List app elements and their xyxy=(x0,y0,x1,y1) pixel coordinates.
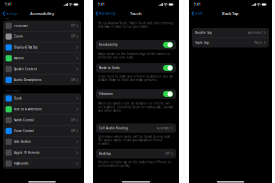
button[interactable]: Motion xyxy=(3,53,81,63)
staticText: Face ID & Attention xyxy=(14,107,42,111)
staticText: Automatic xyxy=(156,126,169,130)
staticText: Switch Control xyxy=(14,118,34,122)
staticText: Zoom xyxy=(14,35,23,38)
staticText: Double Tap xyxy=(195,31,212,34)
staticText: PHYSICAL AND MOTOR xyxy=(5,90,20,92)
staticText: When this switch is off, all vibration o… xyxy=(98,102,173,112)
staticText: Determine where audio will be heard duri… xyxy=(98,135,171,145)
staticText: Audio Descriptions xyxy=(14,78,41,82)
staticText: Settings xyxy=(6,12,17,15)
staticText: Off xyxy=(71,24,75,27)
staticText: Screenshot xyxy=(247,31,262,34)
button[interactable]: Call Audio Routing xyxy=(96,123,176,133)
staticText: Back Tap xyxy=(99,152,111,155)
button[interactable]: Spoken Content xyxy=(3,64,81,74)
button[interactable]: Face ID & Attention xyxy=(3,104,81,114)
staticText: Set up AssistiveTouch, Haptic Touch and … xyxy=(98,21,173,29)
staticText: Voice Control xyxy=(14,129,34,133)
staticText: Touch xyxy=(130,11,142,16)
button[interactable]: Vibration xyxy=(96,89,176,99)
button[interactable]: Display & Text Size xyxy=(3,42,81,53)
button[interactable]: Back Tap xyxy=(96,149,176,158)
staticText: None xyxy=(254,41,262,44)
button[interactable]: Settings xyxy=(0,9,19,18)
staticText: Spoken Content xyxy=(14,67,37,71)
button[interactable]: Switch Control xyxy=(3,115,81,125)
staticText: Side Button xyxy=(14,140,31,143)
staticText: Display & Text Size xyxy=(14,46,38,49)
button[interactable]: Keyboards xyxy=(3,158,81,169)
button[interactable]: Apple TV Remote xyxy=(3,147,81,158)
button[interactable]: Zoom xyxy=(3,31,81,42)
staticText: Accessibility xyxy=(99,12,115,15)
staticText: Triple Tap xyxy=(195,41,209,44)
staticText: Off xyxy=(71,118,75,122)
staticText: Double or triple tap on the back of your… xyxy=(98,160,171,168)
staticText: VISION xyxy=(5,17,9,19)
button[interactable]: Double Tap xyxy=(192,28,269,38)
button[interactable]: Reachability xyxy=(96,40,176,50)
staticText: Off xyxy=(165,152,169,155)
button[interactable]: Side Button xyxy=(3,137,81,147)
staticText: Accessibility xyxy=(30,11,54,16)
staticText: Vibration xyxy=(99,92,113,96)
staticText: Call Audio Routing xyxy=(99,126,128,130)
button[interactable]: Voice Control xyxy=(3,126,81,136)
staticText: Swipe down on the bottom edge of the scr… xyxy=(98,52,170,59)
button[interactable]: Touch xyxy=(3,93,81,104)
staticText: Apple TV Remote xyxy=(14,151,40,154)
button[interactable]: VoiceOver xyxy=(3,20,81,31)
staticText: If you tend to shake your iPhone by acci… xyxy=(98,75,173,82)
button[interactable]: Accessibility xyxy=(93,9,117,18)
staticText: Touch xyxy=(195,12,203,15)
staticText: Touch xyxy=(14,97,22,100)
staticText: 9:41 xyxy=(98,3,105,6)
staticText: Reachability xyxy=(99,43,117,46)
button[interactable]: Audio Descriptions xyxy=(3,75,81,85)
button[interactable]: Touch xyxy=(189,9,205,18)
button[interactable]: Shake to Undo xyxy=(96,63,176,73)
staticText: VoiceOver xyxy=(14,24,28,27)
button[interactable]: Triple Tap xyxy=(192,38,269,47)
staticText: 9:41 xyxy=(194,3,201,6)
staticText: Keyboards xyxy=(14,162,28,165)
staticText: Motion xyxy=(14,56,24,60)
staticText: 9:41 xyxy=(5,3,12,6)
staticText: Off xyxy=(71,78,75,82)
staticText: Off xyxy=(71,129,75,133)
staticText: Shake to Undo xyxy=(99,66,120,70)
staticText: Off xyxy=(71,35,75,38)
staticText: Back Tap xyxy=(222,11,239,16)
